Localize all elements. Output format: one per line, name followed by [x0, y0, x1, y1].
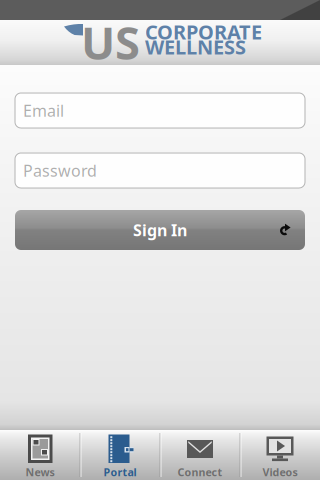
button[interactable]: Videos	[240, 430, 320, 480]
staticText: US	[81, 12, 140, 72]
staticText: Connect	[177, 465, 222, 479]
staticText: News	[25, 465, 54, 479]
staticText: Sign In	[133, 219, 187, 241]
button[interactable]: Sign In	[0, 210, 320, 250]
staticText: WELLNESS	[145, 33, 246, 60]
button[interactable]: Portal	[80, 430, 160, 480]
staticText: Videos	[262, 465, 297, 479]
staticText: Password	[23, 160, 97, 181]
staticText: Portal	[103, 465, 136, 479]
staticText: CORPORATE	[145, 18, 262, 45]
button[interactable]: News	[0, 430, 80, 480]
button[interactable]: Connect	[160, 430, 240, 480]
staticText: Email	[23, 100, 64, 121]
